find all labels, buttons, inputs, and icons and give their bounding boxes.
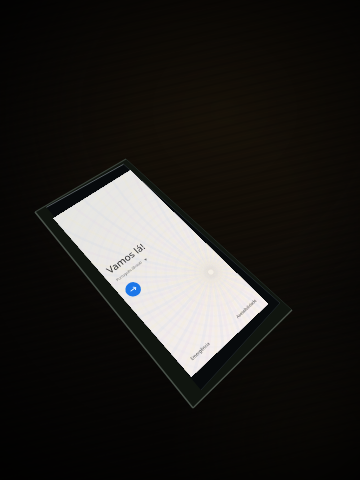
button[interactable]: Photo of a phone showing the setup scree… (0, 0, 360, 480)
